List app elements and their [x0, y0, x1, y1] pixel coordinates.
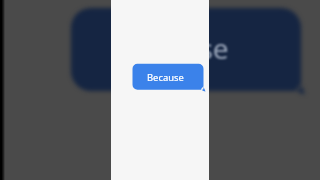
staticText: Because: [119, 29, 229, 67]
staticText: Because: [147, 71, 184, 84]
